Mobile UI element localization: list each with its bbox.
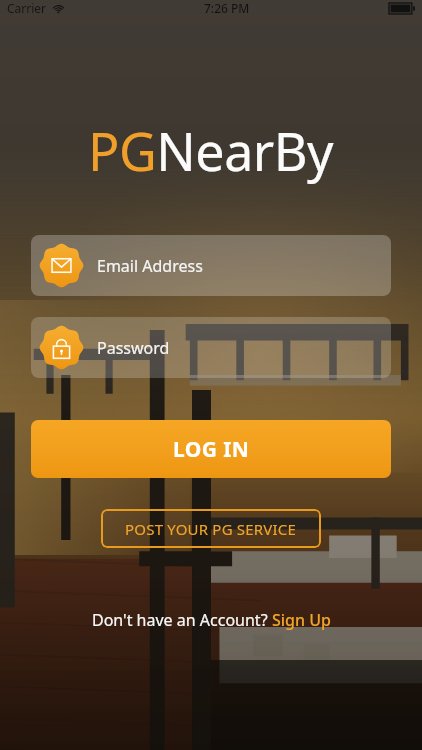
- button[interactable]: Don't have an Account?: [84, 605, 339, 635]
- staticText: Carrier: [7, 0, 47, 16]
- staticText: Password: [97, 337, 170, 359]
- staticText: Sign Up: [272, 609, 331, 631]
- staticText: LOG IN: [173, 435, 250, 464]
- button[interactable]: LOG IN: [31, 420, 391, 478]
- staticText: Don't have an Account?: [92, 609, 272, 631]
- staticText: Email Address: [97, 255, 203, 277]
- button[interactable]: Email Address: [31, 235, 391, 296]
- button[interactable]: Password: [31, 317, 391, 378]
- staticText: 7:26 PM: [204, 0, 250, 16]
- staticText: PGNearBy: [88, 115, 334, 186]
- button[interactable]: POST YOUR PG SERVICE: [101, 509, 321, 548]
- staticText: POST YOUR PG SERVICE: [125, 519, 297, 539]
